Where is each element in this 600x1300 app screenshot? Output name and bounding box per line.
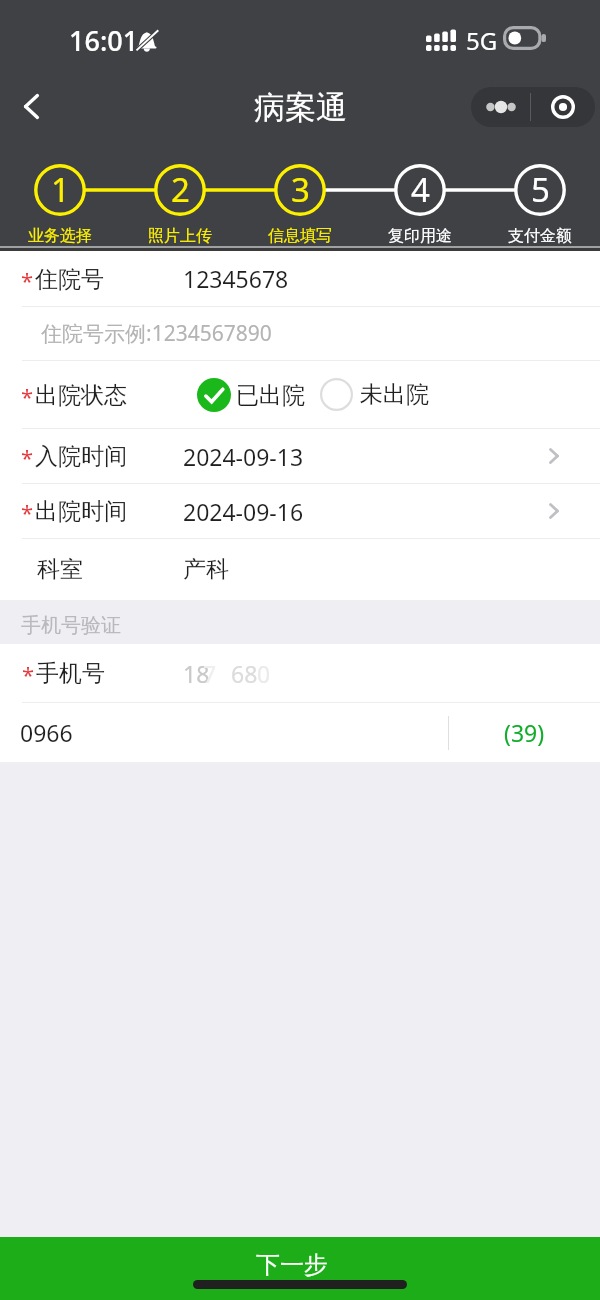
staticText: 出院状态: [35, 381, 127, 410]
staticText: 下一步: [256, 1250, 328, 1280]
button[interactable]: Back: [5, 80, 57, 132]
staticText: 未出院: [360, 380, 429, 409]
button[interactable]: 下一步: [0, 1237, 600, 1300]
staticText: 1: [51, 167, 70, 212]
staticText: 7: [203, 658, 217, 689]
staticText: 出院时间: [35, 497, 127, 526]
button[interactable]: 未出院: [316, 370, 433, 419]
staticText: *: [21, 265, 34, 295]
staticText: 入院时间: [35, 442, 127, 471]
staticText: 住院号: [35, 265, 104, 294]
staticText: *: [21, 381, 34, 411]
staticText: 业务选择: [28, 226, 92, 246]
button[interactable]: 已出院: [193, 370, 309, 420]
staticText: *: [21, 497, 34, 527]
staticText: 0966: [20, 717, 73, 748]
staticText: 已出院: [236, 381, 305, 410]
staticText: 3: [291, 167, 310, 212]
staticText: 2024-09-13: [183, 441, 304, 472]
staticText: *: [22, 659, 35, 689]
staticText: 2024-09-16: [183, 496, 304, 527]
staticText: 病案通: [254, 88, 347, 127]
staticText: 复印用途: [388, 226, 452, 246]
staticText: 18: [183, 658, 210, 689]
staticText: 0: [257, 658, 271, 689]
staticText: 手机号: [36, 659, 105, 688]
staticText: *: [21, 442, 34, 472]
staticText: 5: [531, 167, 550, 212]
button[interactable]: *: [0, 644, 600, 702]
button[interactable]: *: [0, 251, 600, 306]
staticText: 产科: [183, 555, 229, 584]
button[interactable]: 科室: [0, 539, 600, 600]
staticText: 68: [231, 658, 258, 689]
staticText: 16:01: [69, 22, 139, 59]
button[interactable]: *: [0, 429, 600, 483]
button[interactable]: (39): [448, 703, 600, 762]
staticText: 信息填写: [268, 226, 332, 246]
staticText: 手机号验证: [21, 613, 121, 638]
staticText: 2: [171, 167, 190, 212]
staticText: 支付金额: [508, 226, 572, 246]
staticText: 12345678: [183, 263, 289, 294]
button[interactable]: More options: [471, 87, 530, 127]
staticText: 科室: [37, 555, 83, 584]
staticText: 住院号示例:1234567890: [41, 319, 272, 348]
staticText: 照片上传: [148, 226, 212, 246]
button[interactable]: *: [0, 484, 600, 538]
button[interactable]: Close mini program: [531, 87, 595, 127]
staticText: 5G: [466, 24, 498, 57]
staticText: 4: [411, 167, 430, 212]
staticText: (39): [504, 717, 545, 748]
